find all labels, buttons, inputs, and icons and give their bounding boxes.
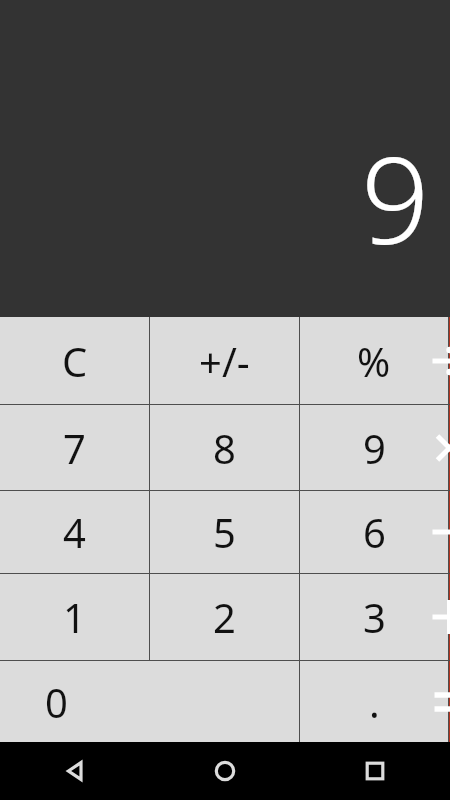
button[interactable]: Recent apps xyxy=(300,742,450,800)
button[interactable]: C xyxy=(0,317,149,404)
button[interactable]: 2 xyxy=(150,574,299,660)
button[interactable]: Back xyxy=(0,742,150,800)
staticText: . xyxy=(369,675,380,729)
staticText: 6 xyxy=(363,505,386,559)
button[interactable]: 9 xyxy=(300,405,448,490)
button[interactable]: 6 xyxy=(300,491,448,573)
staticText: C xyxy=(62,334,88,388)
button[interactable]: Home xyxy=(150,742,300,800)
staticText: 9 xyxy=(363,421,386,475)
button[interactable]: 4 xyxy=(0,491,149,573)
button[interactable]: 8 xyxy=(150,405,299,490)
button[interactable]: 0 xyxy=(0,661,299,742)
button[interactable]: . xyxy=(300,661,448,742)
button[interactable]: 3 xyxy=(300,574,448,660)
button[interactable]: Minus xyxy=(449,491,450,573)
staticText: 2 xyxy=(213,590,236,644)
button[interactable]: 5 xyxy=(150,491,299,573)
staticText: 5 xyxy=(213,505,236,559)
button[interactable]: +/- xyxy=(150,317,299,404)
staticText: 0 xyxy=(45,675,68,729)
staticText: 3 xyxy=(363,590,386,644)
staticText: 4 xyxy=(63,505,86,559)
button[interactable]: Plus xyxy=(449,574,450,660)
staticText: 7 xyxy=(63,421,86,475)
staticText: 8 xyxy=(213,421,236,475)
button[interactable]: 7 xyxy=(0,405,149,490)
staticText: % xyxy=(357,334,391,388)
button[interactable]: Multiply xyxy=(449,405,450,490)
button[interactable]: % xyxy=(300,317,448,404)
button[interactable]: Equals xyxy=(449,661,450,742)
button[interactable]: Divide xyxy=(449,317,450,404)
button[interactable]: 1 xyxy=(0,574,149,660)
staticText: +/- xyxy=(199,334,250,388)
staticText: 9 xyxy=(361,116,430,279)
staticText: 1 xyxy=(63,590,86,644)
